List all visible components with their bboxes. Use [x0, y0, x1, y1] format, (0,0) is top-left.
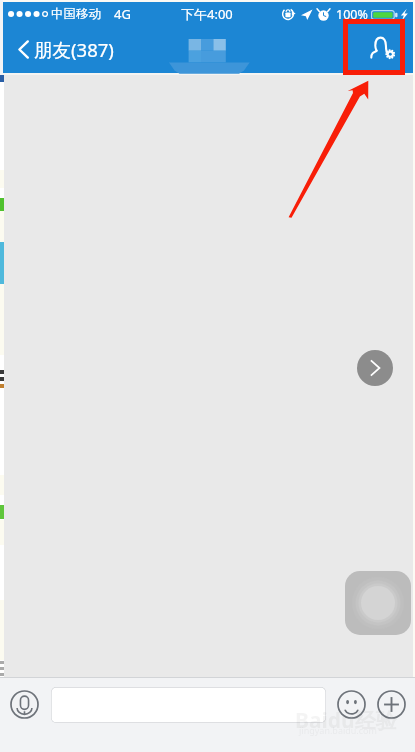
- staticText: jingyan.baidu.com: [299, 724, 377, 736]
- staticText: 4G: [114, 5, 131, 23]
- button[interactable]: [51, 687, 326, 723]
- staticText: 下午4:00: [181, 5, 233, 23]
- staticText: 中国移动: [51, 6, 101, 22]
- button[interactable]: 朋友(387): [3, 31, 126, 68]
- button[interactable]: More options: [377, 690, 406, 719]
- staticText: 100%: [336, 6, 368, 23]
- staticText: 朋友(387): [34, 37, 114, 62]
- button[interactable]: Manage contacts: [359, 26, 407, 70]
- button[interactable]: Emoji: [337, 690, 366, 719]
- staticText: Baidu经验: [295, 706, 397, 735]
- button[interactable]: Voice input: [10, 690, 39, 719]
- button[interactable]: Next page: [357, 350, 393, 386]
